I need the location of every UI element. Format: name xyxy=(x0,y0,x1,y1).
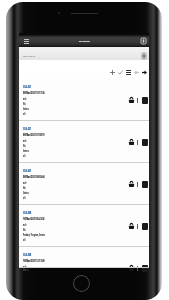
staticText: My Scans xyxy=(79,40,90,43)
staticText: m/z xyxy=(23,139,26,143)
staticText: CCA-021 xyxy=(23,168,32,172)
button[interactable]: Locked xyxy=(127,223,135,231)
staticText: m/z xyxy=(23,97,26,101)
staticText: CCA-021 xyxy=(23,126,32,130)
staticText: No xyxy=(23,186,26,190)
staticText: Intens. xyxy=(23,268,29,272)
staticText: Intens. xyxy=(23,149,29,153)
button[interactable]: CCA-008 xyxy=(19,205,149,247)
staticText: m/z xyxy=(23,139,26,143)
staticText: x/t xyxy=(23,196,26,200)
staticText: 08/Mar/2021 08:02:44 xyxy=(23,174,45,178)
staticText: CCA-008 xyxy=(23,210,32,214)
staticText: Intens. xyxy=(23,149,29,153)
staticText: Product, Program, Intens xyxy=(23,233,45,237)
staticText: 08/Mar/2021 10:17:34 xyxy=(23,90,45,94)
button[interactable]: Locked xyxy=(127,139,135,147)
staticText: 18/Mar/2021 06:23:02 xyxy=(23,216,45,220)
staticText: m/z xyxy=(23,97,26,101)
staticText: x/t xyxy=(23,238,26,242)
staticText: No xyxy=(23,144,26,148)
staticText: m/z xyxy=(23,181,26,185)
staticText: No xyxy=(23,144,26,148)
button[interactable]: Scan barcode xyxy=(142,53,146,59)
staticText: No xyxy=(23,228,26,232)
staticText: 08/Mar/2021 10:17:34 xyxy=(23,90,45,94)
button[interactable]: Quick Search xyxy=(19,47,149,60)
button[interactable]: List view xyxy=(124,68,132,76)
staticText: x/t xyxy=(23,196,26,200)
staticText: 18/Mar/2021 12:17:40 xyxy=(23,258,45,262)
staticText: 08/Mar/2021 08:02:44 xyxy=(23,174,45,178)
staticText: x/t xyxy=(23,112,26,116)
staticText: No xyxy=(23,186,26,190)
staticText: No xyxy=(23,228,26,232)
button[interactable]: Select xyxy=(116,68,124,76)
button[interactable]: Locked xyxy=(127,97,135,105)
button[interactable]: Open scan xyxy=(141,181,149,189)
staticText: m/z xyxy=(23,223,26,227)
staticText: No xyxy=(23,102,26,106)
button[interactable]: Locked xyxy=(127,181,135,189)
staticText: Intens. xyxy=(23,191,29,195)
button[interactable]: CCA-008 xyxy=(19,247,149,268)
staticText: m/z xyxy=(23,223,26,227)
staticText: No xyxy=(23,268,26,272)
button[interactable]: Open scan xyxy=(141,223,149,231)
staticText: CCA-021 xyxy=(23,84,32,88)
button[interactable]: CCA-021 xyxy=(19,121,149,163)
staticText: CCA-008 xyxy=(23,252,32,256)
button[interactable]: Device info xyxy=(137,35,149,47)
staticText: x/t xyxy=(23,238,26,242)
button[interactable]: Previous xyxy=(132,68,140,76)
staticText: CCA-021 xyxy=(23,84,32,88)
staticText: x/t xyxy=(23,112,26,116)
staticText: Quick Search xyxy=(23,55,36,58)
staticText: No xyxy=(23,268,26,272)
staticText: CCA-021 xyxy=(23,126,32,130)
staticText: 18/Mar/2021 12:17:40 xyxy=(23,258,45,262)
button[interactable]: CCA-021 xyxy=(19,163,149,205)
staticText: 18/Mar/2021 06:23:02 xyxy=(23,216,45,220)
staticText: CCA-008 xyxy=(23,252,32,256)
button[interactable]: Menu xyxy=(19,35,33,47)
staticText: No xyxy=(23,102,26,106)
button[interactable]: Add xyxy=(108,68,116,76)
staticText: Intens. xyxy=(23,107,29,111)
staticText: Intens. xyxy=(23,268,29,272)
staticText: Intens. xyxy=(23,107,29,111)
staticText: x/t xyxy=(23,154,26,158)
staticText: 08/Mar/2021 07:38:19 xyxy=(23,132,45,136)
button[interactable]: Open scan xyxy=(141,265,149,273)
staticText: x/t xyxy=(23,268,26,272)
button[interactable]: Open scan xyxy=(141,139,149,147)
button[interactable]: Locked xyxy=(127,265,135,273)
staticText: x/t xyxy=(23,154,26,158)
button[interactable]: Next xyxy=(140,68,148,76)
staticText: Product, Program, Intens xyxy=(23,233,45,237)
staticText: CCA-021 xyxy=(23,168,32,172)
staticText: m/z xyxy=(23,265,26,269)
button[interactable]: CCA-021 xyxy=(19,79,149,121)
staticText: m/z xyxy=(23,265,26,269)
staticText: CCA-008 xyxy=(23,210,32,214)
staticText: x/t xyxy=(23,268,26,272)
staticText: m/z xyxy=(23,181,26,185)
button[interactable]: Open scan xyxy=(141,97,149,105)
staticText: 08/Mar/2021 07:38:19 xyxy=(23,132,45,136)
staticText: Intens. xyxy=(23,191,29,195)
